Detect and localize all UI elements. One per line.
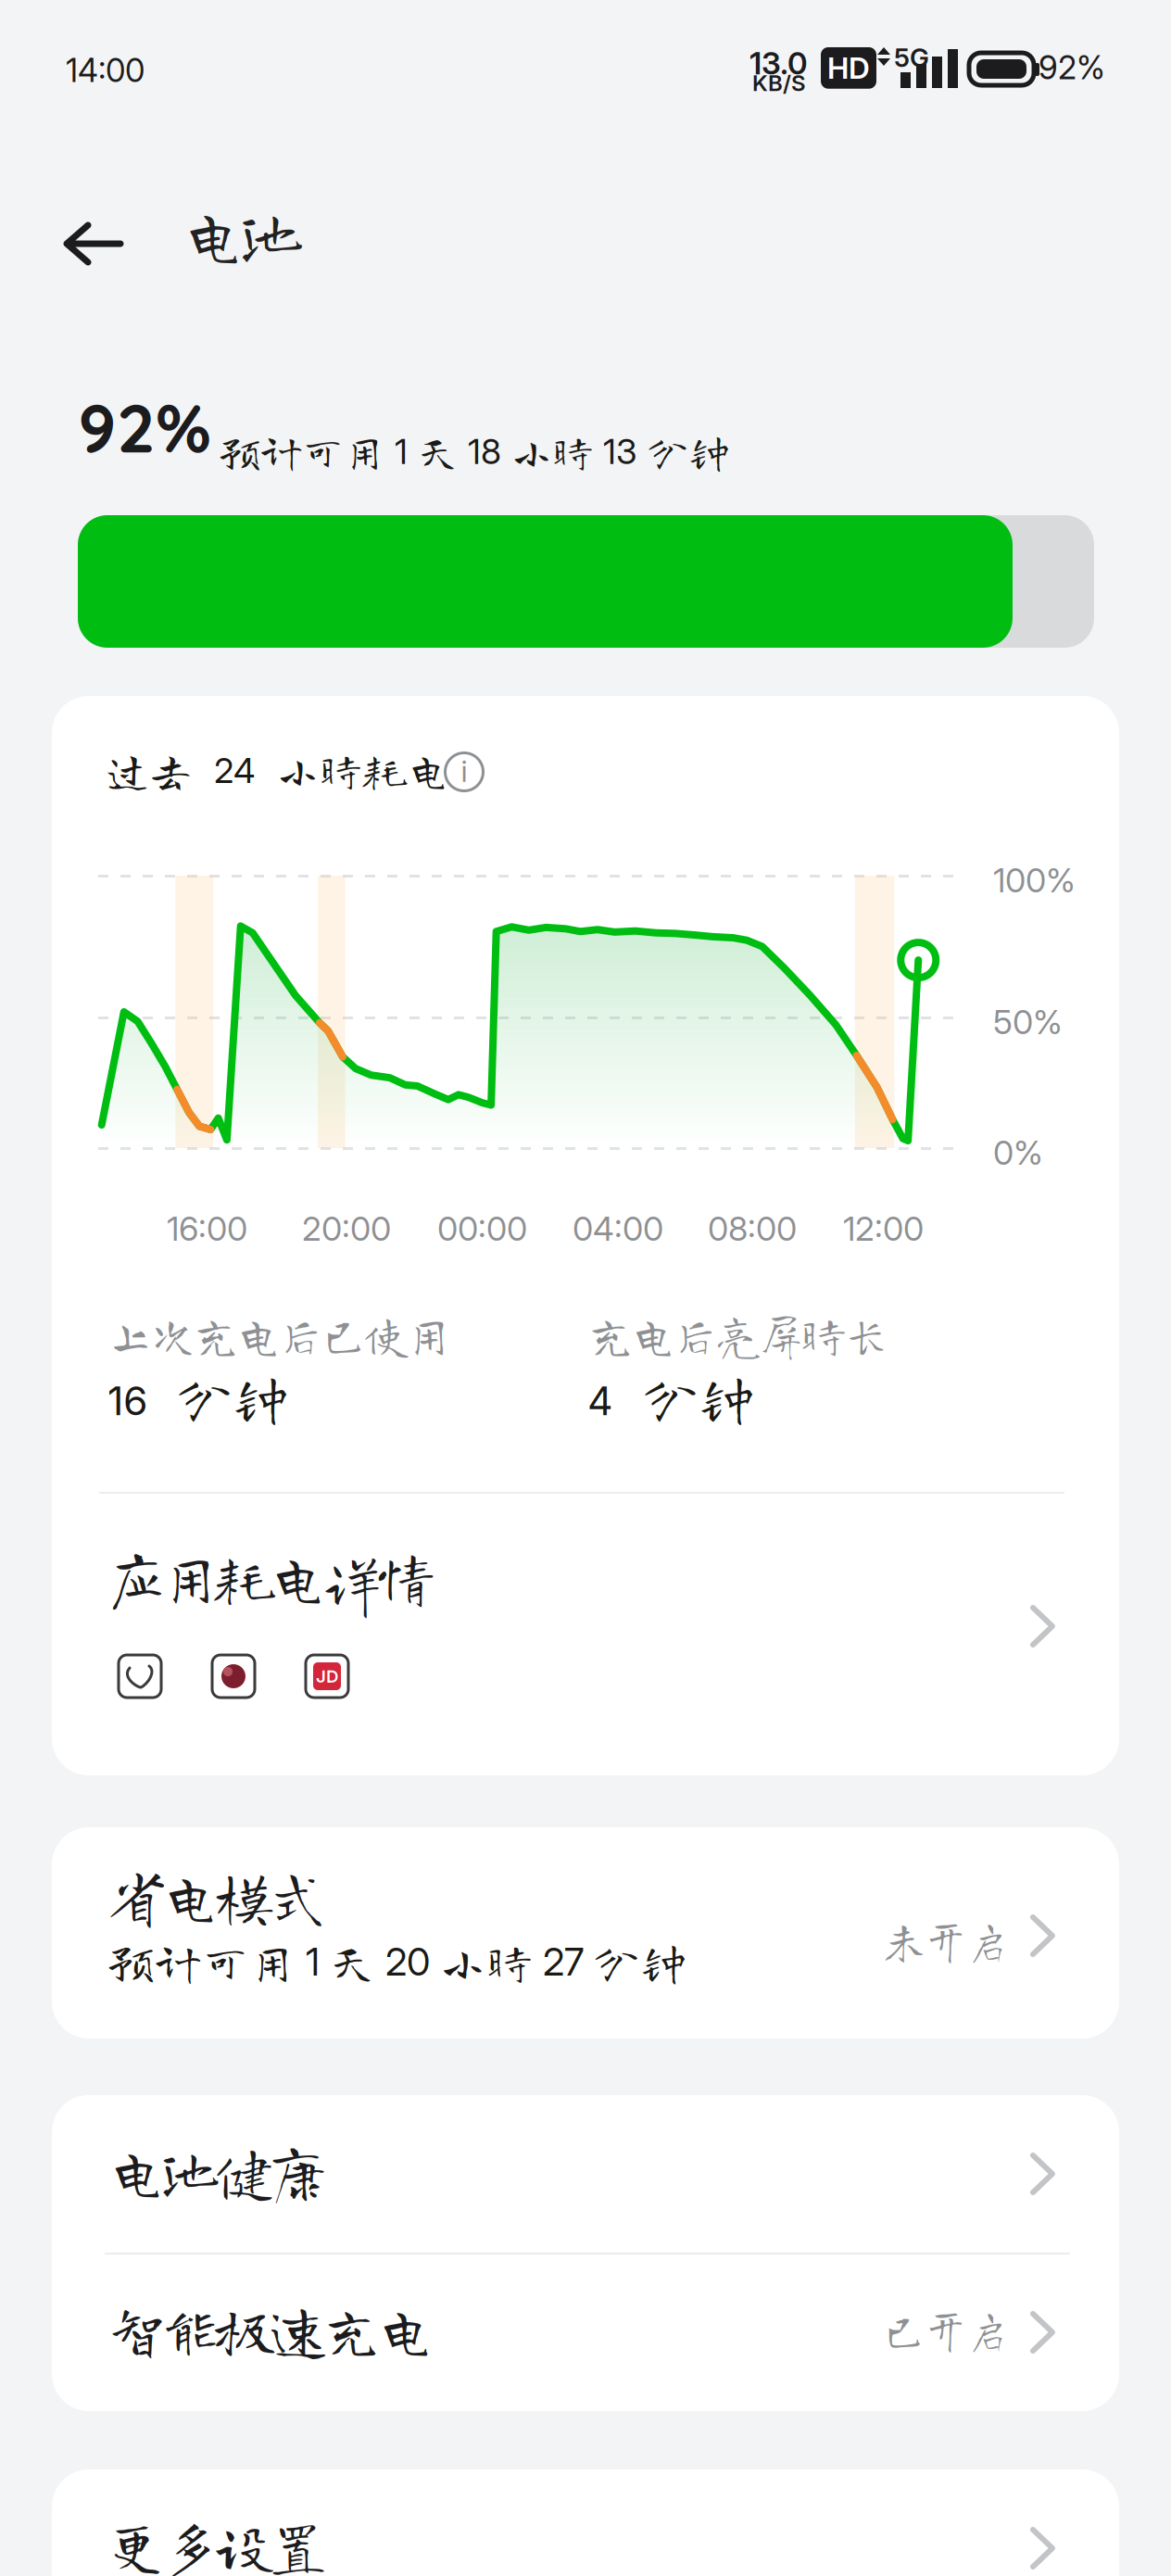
staticText: 省电模式 — [107, 1866, 328, 1926]
staticText: KB/S — [752, 69, 806, 96]
staticText: 4 分钟 — [587, 1370, 755, 1425]
button[interactable]: Back — [46, 206, 141, 282]
staticText: 00:00 — [437, 1208, 527, 1249]
button[interactable]: 电池健康 — [52, 2095, 1119, 2253]
staticText: 14:00 — [66, 51, 145, 90]
staticText: 电池 — [182, 202, 304, 266]
staticText: 100% — [993, 860, 1076, 900]
staticText: 50% — [993, 1002, 1063, 1042]
staticText: 电池健康 — [107, 2141, 328, 2201]
staticText: i — [461, 753, 467, 789]
staticText: 08:00 — [708, 1208, 797, 1249]
staticText: 更多设置 — [107, 2516, 328, 2575]
staticText: HD — [827, 50, 870, 86]
staticText: 智能极速充电 — [107, 2300, 435, 2359]
staticText: 13.0 — [749, 44, 808, 82]
button[interactable]: 智能极速充电 — [52, 2254, 1119, 2411]
button[interactable]: 应用耗电详情 — [52, 1492, 1119, 1775]
staticText: 20:00 — [302, 1208, 391, 1249]
staticText: 5G — [894, 42, 929, 73]
button[interactable]: 更多设置 — [52, 2469, 1119, 2576]
staticText: 过去 24 小时耗电 — [106, 749, 472, 791]
staticText: 预计可用 1 天 20 小时 27 分钟 — [107, 1938, 687, 1984]
staticText: 已开启 — [882, 2307, 1029, 2352]
staticText: 预计可用 1 天 18 小时 13 分钟 — [219, 431, 730, 472]
staticText: 12:00 — [843, 1208, 924, 1249]
staticText: 16:00 — [167, 1208, 247, 1249]
staticText: 92% — [78, 385, 211, 470]
staticText: JD — [316, 1666, 338, 1687]
button[interactable]: 省电模式 — [52, 1827, 1119, 2039]
staticText: 上次充电后已使用 — [107, 1311, 453, 1358]
staticText: 0% — [993, 1132, 1043, 1173]
staticText: 04:00 — [573, 1208, 663, 1249]
staticText: 应用耗电详情 — [107, 1547, 435, 1607]
staticText: 16 分钟 — [107, 1370, 289, 1425]
staticText: 未开启 — [882, 1918, 1029, 1963]
staticText: 92% — [1039, 48, 1105, 87]
staticText: 充电后亮屏时长 — [587, 1311, 890, 1358]
